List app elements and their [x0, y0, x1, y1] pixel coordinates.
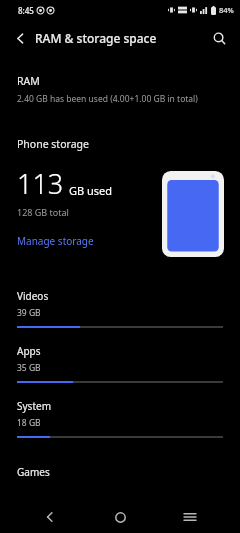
- button[interactable]: Search: [205, 24, 233, 52]
- staticText: Apps: [17, 344, 41, 358]
- staticText: GB used: [69, 183, 113, 198]
- staticText: 2.40 GB has been used (4.00+1.00 GB in t…: [17, 93, 198, 105]
- staticText: RAM & storage space: [35, 30, 157, 46]
- staticText: System: [17, 399, 51, 413]
- staticText: 113: [17, 165, 64, 202]
- staticText: Manage storage: [17, 234, 94, 248]
- staticText: 84%: [219, 5, 234, 15]
- staticText: 18 GB: [17, 417, 41, 429]
- button[interactable]: System: [0, 397, 240, 452]
- staticText: 39 GB: [17, 307, 41, 319]
- button[interactable]: Manage storage: [17, 234, 94, 248]
- button[interactable]: Back: [6, 24, 34, 52]
- staticText: Videos: [17, 289, 49, 303]
- button[interactable]: Apps: [0, 342, 240, 397]
- staticText: 128 GB total: [17, 206, 69, 218]
- staticText: Games: [17, 465, 50, 479]
- staticText: 8:45: [18, 5, 34, 16]
- button[interactable]: Videos: [0, 287, 240, 342]
- button[interactable]: RAM: [0, 74, 240, 105]
- staticText: Phone storage: [17, 137, 89, 151]
- button[interactable]: Home: [100, 502, 140, 532]
- button[interactable]: Back: [30, 502, 70, 532]
- staticText: 35 GB: [17, 362, 41, 374]
- staticText: RAM: [17, 74, 40, 88]
- button[interactable]: Recent apps: [170, 502, 210, 532]
